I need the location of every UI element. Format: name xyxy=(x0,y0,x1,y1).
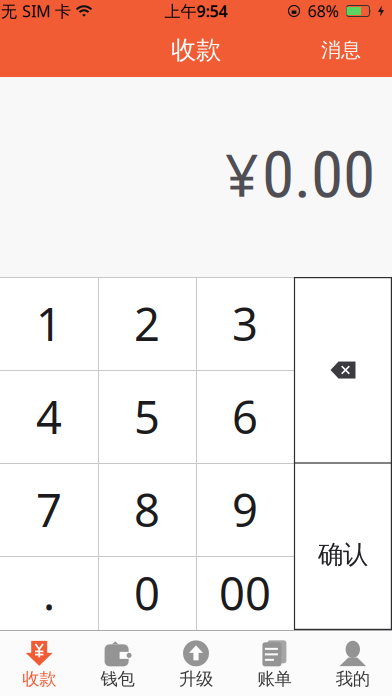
staticText: 0.00 xyxy=(262,137,375,213)
staticText: 5 xyxy=(134,386,160,447)
button[interactable]: 收款 xyxy=(0,631,78,696)
staticText: 9 xyxy=(232,479,258,540)
button[interactable]: 账单 xyxy=(235,631,314,696)
button[interactable]: 钱包 xyxy=(78,631,157,696)
staticText: 2 xyxy=(134,293,160,354)
button[interactable]: Delete xyxy=(294,277,392,463)
staticText: 钱包 xyxy=(101,668,135,690)
button[interactable]: 0 xyxy=(98,556,196,630)
button[interactable]: 6 xyxy=(196,370,294,463)
staticText: 收款 xyxy=(22,668,56,690)
button[interactable]: 9 xyxy=(196,463,294,556)
staticText: 3 xyxy=(232,293,258,354)
staticText: 4 xyxy=(36,386,62,447)
staticText: 消息 xyxy=(321,38,361,62)
button[interactable]: 2 xyxy=(98,277,196,370)
button[interactable]: 4 xyxy=(0,370,98,463)
staticText: ¥ xyxy=(225,135,259,213)
staticText: 账单 xyxy=(257,668,291,690)
button[interactable]: 升级 xyxy=(157,631,235,696)
button[interactable]: 1 xyxy=(0,277,98,370)
button[interactable]: 消息 xyxy=(311,28,371,72)
button[interactable]: 8 xyxy=(98,463,196,556)
staticText: 00 xyxy=(219,563,271,623)
staticText: . xyxy=(43,563,55,623)
staticText: 我的 xyxy=(336,668,370,690)
button[interactable]: 00 xyxy=(196,556,294,630)
staticText: 8 xyxy=(134,479,160,540)
button[interactable]: 7 xyxy=(0,463,98,556)
staticText: 1 xyxy=(36,293,62,354)
staticText: 68% xyxy=(307,0,338,22)
staticText: 无 SIM 卡 xyxy=(1,0,71,22)
button[interactable]: . xyxy=(0,556,98,630)
staticText: 7 xyxy=(36,479,62,540)
button[interactable]: 确认 xyxy=(294,463,392,630)
button[interactable]: 5 xyxy=(98,370,196,463)
button[interactable]: 我的 xyxy=(314,631,392,696)
staticText: 收款 xyxy=(171,34,221,65)
button[interactable]: 3 xyxy=(196,277,294,370)
staticText: 6 xyxy=(232,386,258,447)
staticText: 升级 xyxy=(179,668,213,690)
staticText: 上午9:54 xyxy=(164,0,227,22)
staticText: 确认 xyxy=(318,539,368,570)
staticText: 0 xyxy=(134,563,160,623)
